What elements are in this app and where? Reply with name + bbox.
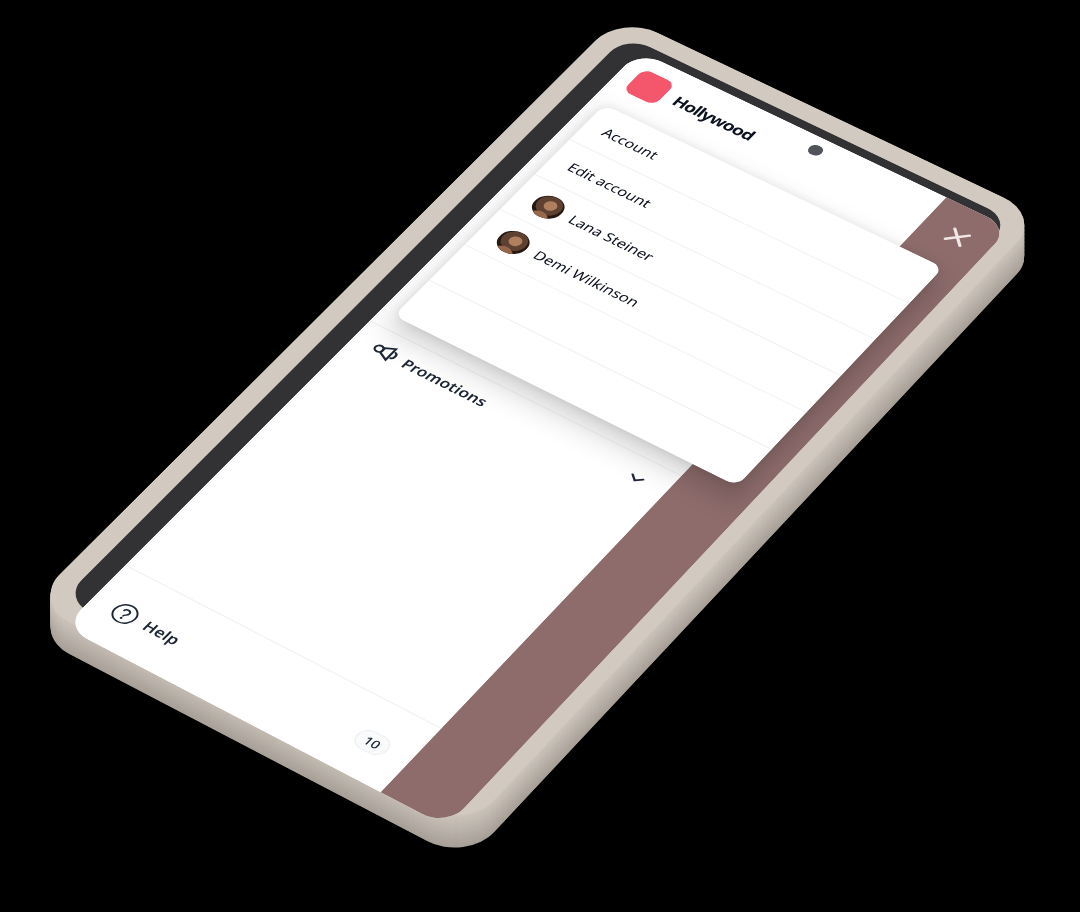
button[interactable]: [393, 280, 771, 486]
button[interactable]: Lana Steiner: [500, 174, 875, 375]
staticText: Hollywood: [667, 92, 761, 145]
button[interactable]: Promotions: [337, 321, 681, 509]
button[interactable]: [429, 245, 806, 449]
staticText: Demi Wilkinson: [529, 246, 645, 310]
staticText: Help: [138, 617, 186, 650]
staticText: Lana Steiner: [564, 211, 659, 264]
staticText: 10: [359, 732, 385, 752]
staticText: Account: [598, 124, 664, 162]
staticText: Edit account: [563, 159, 657, 211]
button[interactable]: Help: [76, 580, 426, 779]
button[interactable]: Close: [926, 215, 989, 260]
button[interactable]: Edit account: [535, 140, 909, 339]
staticText: Promotions: [397, 355, 493, 411]
button[interactable]: Demi Wilkinson: [465, 209, 841, 412]
